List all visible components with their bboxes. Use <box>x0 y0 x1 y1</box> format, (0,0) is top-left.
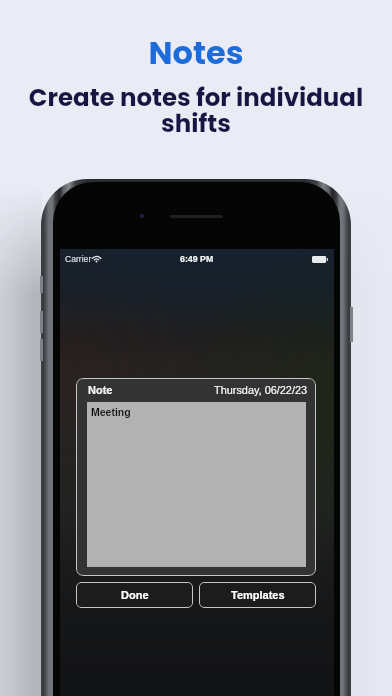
staticText: Meeting <box>91 406 131 418</box>
staticText: Done <box>121 589 149 601</box>
staticText: Carrier <box>65 254 92 264</box>
button[interactable]: Meeting <box>87 402 306 567</box>
staticText: Templates <box>231 589 285 601</box>
staticText: Create notes for individual shifts <box>12 80 380 141</box>
staticText: 6:49 PM <box>180 254 214 264</box>
other: Wi-Fi <box>92 255 101 262</box>
staticText: Notes <box>148 30 244 75</box>
staticText: Note <box>88 384 113 396</box>
button[interactable]: Done <box>76 582 193 608</box>
staticText: Thursday, 06/22/23 <box>214 384 308 396</box>
button[interactable]: Templates <box>199 582 316 608</box>
